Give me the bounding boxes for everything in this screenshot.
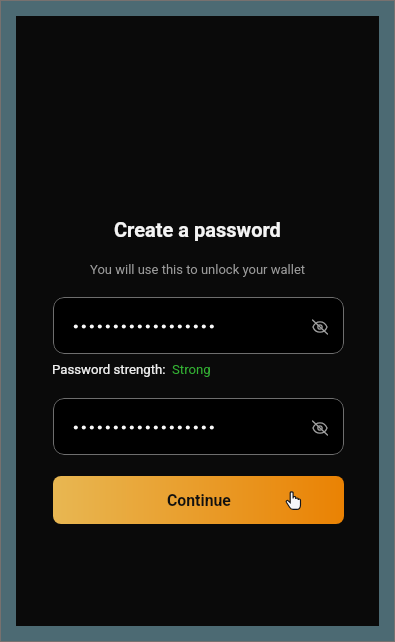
button[interactable]: Show password	[53, 297, 344, 354]
staticText: Continue	[167, 491, 231, 510]
staticText: Password strength: Strong	[52, 362, 211, 377]
button[interactable]: Show password	[53, 398, 344, 455]
staticText: You will use this to unlock your wallet	[90, 262, 306, 277]
staticText: Create a password	[114, 218, 281, 241]
button[interactable]: Show password	[307, 314, 333, 340]
button[interactable]: Continue	[53, 476, 344, 524]
button[interactable]: Show password	[307, 415, 333, 441]
